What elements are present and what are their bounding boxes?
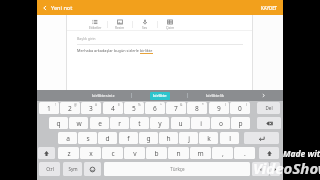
staticText: Made with [283, 148, 320, 160]
button[interactable]: Enter [244, 132, 279, 144]
button[interactable]: 8 [187, 102, 207, 114]
button[interactable]: Back [40, 3, 49, 12]
staticText: 2 [68, 104, 72, 113]
button[interactable]: o [211, 117, 230, 129]
button[interactable]: Sym [63, 162, 82, 176]
staticText: ^ [160, 103, 162, 107]
button[interactable]: Çizim [158, 18, 182, 30]
button[interactable]: h [159, 132, 178, 144]
button[interactable]: t [130, 117, 149, 129]
button[interactable]: More suggestions [243, 90, 283, 101]
button[interactable]: j [179, 132, 198, 144]
button[interactable]: y [150, 117, 169, 129]
button[interactable]: Türkçe [104, 162, 250, 176]
button[interactable]: s [78, 132, 97, 144]
button[interactable]: i [191, 117, 210, 129]
button[interactable]: 5 [124, 102, 144, 114]
staticText: r [118, 119, 121, 128]
button[interactable]: Ses [133, 18, 157, 30]
staticText: w [76, 119, 82, 128]
staticText: @ [74, 103, 77, 107]
staticText: c [111, 149, 115, 158]
button[interactable]: Shift [259, 147, 279, 159]
staticText: Çizim [166, 26, 175, 30]
button[interactable]: Del [257, 102, 280, 114]
button[interactable]: n [168, 147, 189, 159]
button[interactable]: f [119, 132, 138, 144]
staticText: Sym [68, 166, 78, 172]
button[interactable]: a [58, 132, 77, 144]
button[interactable]: k [199, 132, 218, 144]
staticText: , [222, 149, 224, 158]
staticText: e [98, 119, 102, 128]
staticText: s [86, 134, 90, 143]
staticText: birlikte [153, 93, 167, 99]
staticText: 7 [174, 104, 178, 113]
button[interactable]: . [234, 147, 255, 159]
button[interactable]: w [69, 117, 88, 129]
button[interactable]: q [49, 117, 68, 129]
button[interactable]: Ctrl [39, 162, 60, 176]
button[interactable]: p [231, 117, 250, 129]
staticText: g [146, 134, 151, 143]
button[interactable]: Etiketler [83, 18, 107, 30]
staticText: & [180, 103, 183, 107]
button[interactable]: birliktesiniz [76, 90, 131, 101]
button[interactable]: x [80, 147, 101, 159]
button[interactable]: 7 [166, 102, 186, 114]
button[interactable]: g [139, 132, 158, 144]
button[interactable]: Backspace [257, 117, 281, 129]
staticText: 0 [238, 104, 242, 113]
staticText: 6 [153, 104, 157, 113]
button[interactable]: Emoji [84, 162, 101, 176]
button[interactable]: l [220, 132, 239, 144]
staticText: Yeni not [51, 4, 73, 12]
staticText: z [67, 149, 71, 158]
staticText: j [188, 134, 190, 143]
button[interactable]: b [146, 147, 167, 159]
button[interactable]: m [190, 147, 211, 159]
staticText: q [56, 119, 61, 128]
button[interactable]: birliktelik [188, 90, 243, 101]
button[interactable]: birlikte [132, 90, 187, 101]
staticText: birlikte [140, 48, 153, 53]
button[interactable]: 0 [230, 102, 250, 114]
staticText: h [166, 134, 171, 143]
staticText: ) [246, 103, 247, 107]
button[interactable]: u [171, 117, 190, 129]
staticText: birliktesiniz [92, 93, 115, 99]
button[interactable]: r [110, 117, 129, 129]
button[interactable]: 6 [145, 102, 165, 114]
staticText: p [238, 119, 243, 128]
staticText: m [197, 149, 204, 158]
button[interactable]: e [90, 117, 109, 129]
button[interactable]: , [212, 147, 233, 159]
staticText: % [138, 103, 141, 107]
button[interactable]: Left [252, 162, 269, 176]
staticText: v [133, 149, 137, 158]
button[interactable]: z [58, 147, 79, 159]
button[interactable]: Shift [38, 147, 55, 159]
staticText: Etiketler [89, 26, 102, 30]
staticText: . [244, 149, 246, 158]
staticText: $ [118, 103, 120, 107]
staticText: Başlık girin [77, 36, 96, 41]
staticText: u [178, 119, 183, 128]
staticText: f [127, 134, 130, 143]
button[interactable]: c [102, 147, 123, 159]
button[interactable]: Resim [108, 18, 132, 30]
staticText: 1 [47, 104, 51, 113]
button[interactable]: 2 [60, 102, 80, 114]
button[interactable]: 3 [81, 102, 101, 114]
staticText: birliktelik [206, 93, 225, 99]
staticText: 4 [111, 104, 115, 113]
button[interactable]: Right [270, 162, 280, 176]
button[interactable]: 9 [209, 102, 229, 114]
staticText: 9 [217, 104, 221, 113]
button[interactable]: v [124, 147, 145, 159]
button[interactable]: d [98, 132, 117, 144]
staticText: a [66, 134, 70, 143]
button[interactable]: 4 [103, 102, 123, 114]
button[interactable]: 1 [39, 102, 59, 114]
button[interactable]: KAYDET [258, 3, 281, 13]
